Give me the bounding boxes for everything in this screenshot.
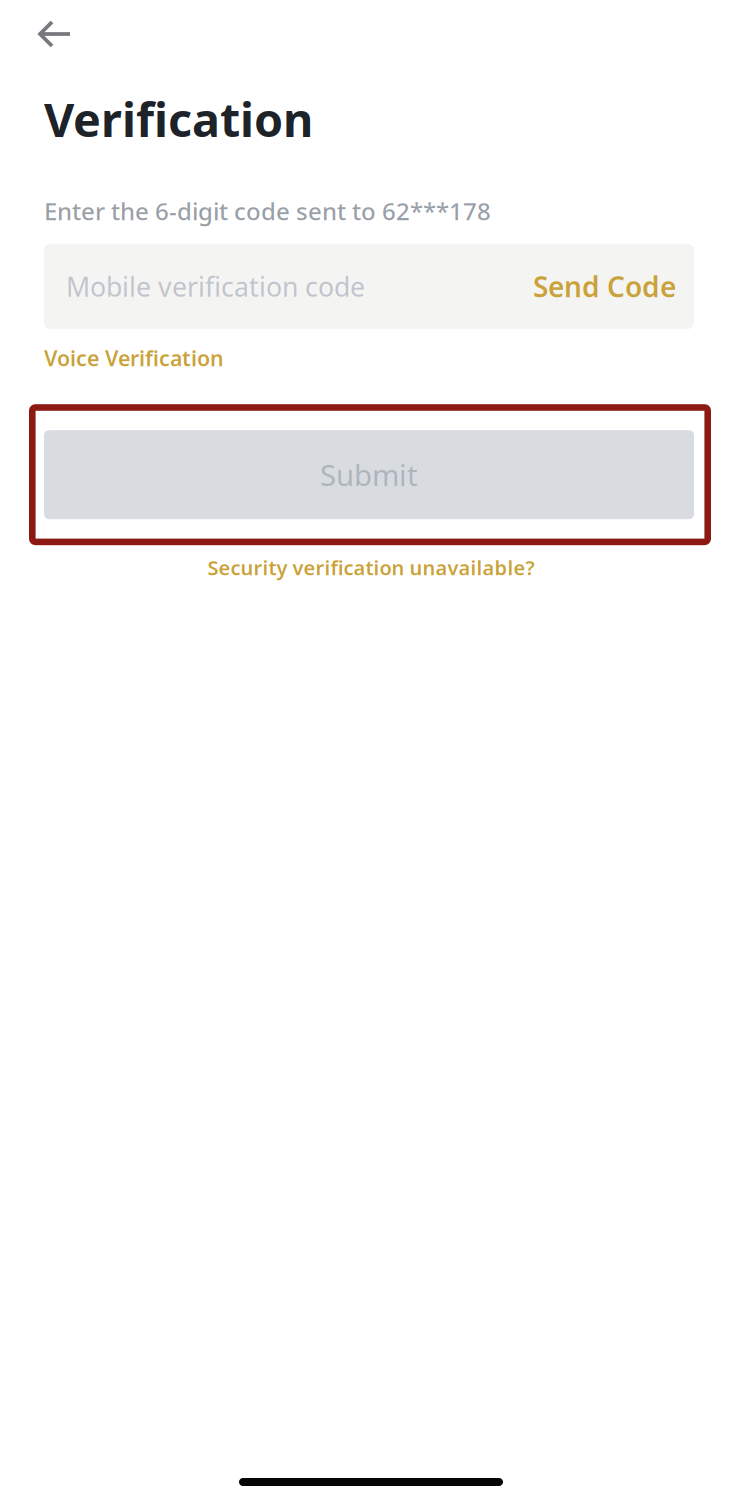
staticText: Submit xyxy=(320,455,418,494)
staticText: Enter the 6-digit code sent to 62***178 xyxy=(44,195,491,227)
button[interactable]: Voice Verification xyxy=(44,329,244,382)
staticText: Security verification unavailable? xyxy=(207,554,534,581)
staticText: Send Code xyxy=(533,268,676,305)
staticText: Verification xyxy=(44,88,313,150)
button[interactable]: Security verification unavailable? xyxy=(195,546,546,589)
button[interactable]: Send Code xyxy=(533,268,676,305)
button[interactable]: Back xyxy=(28,0,90,65)
staticText: Voice Verification xyxy=(44,344,224,372)
button[interactable]: Submit xyxy=(44,430,694,519)
staticText: Mobile verification code xyxy=(66,269,365,304)
